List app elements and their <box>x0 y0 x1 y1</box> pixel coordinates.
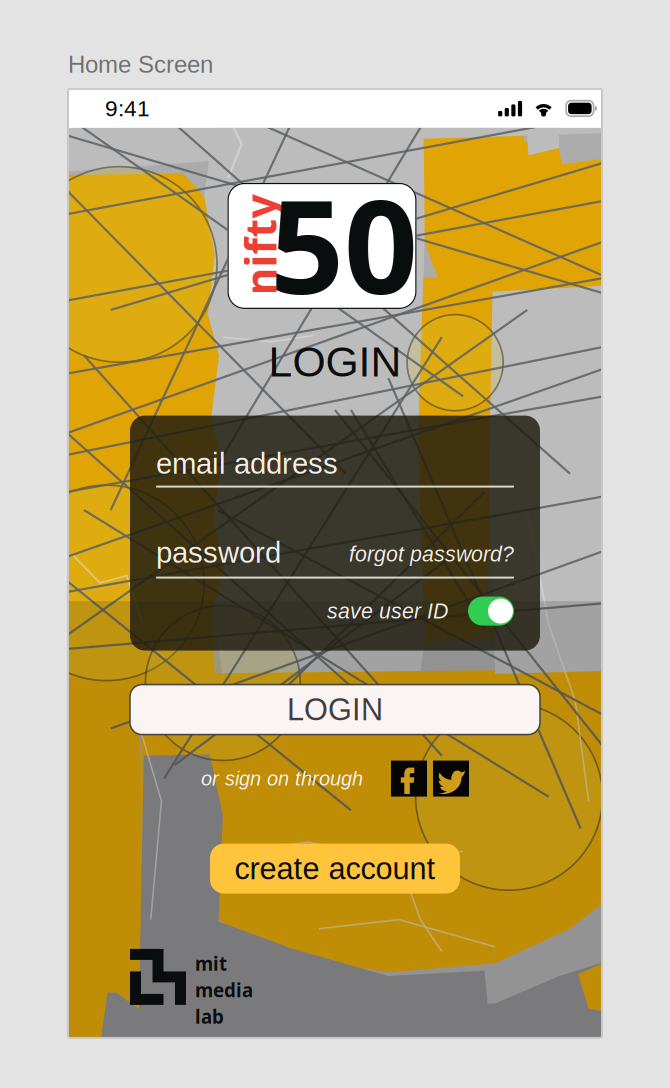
staticText: email address <box>156 447 338 480</box>
button[interactable]: forgot password? <box>349 542 514 569</box>
button[interactable]: create account <box>210 844 460 894</box>
staticText: password <box>156 536 281 569</box>
staticText: media <box>195 977 253 1003</box>
button[interactable]: Save user ID <box>468 597 514 626</box>
staticText: LOGIN <box>287 692 383 727</box>
button[interactable]: Sign on with Twitter <box>433 761 469 797</box>
staticText: 9:41 <box>105 96 150 121</box>
staticText: create account <box>234 851 435 886</box>
staticText: 50 <box>270 156 418 332</box>
staticText: or sign on through <box>201 767 363 790</box>
staticText: Home Screen <box>68 51 213 78</box>
button[interactable]: LOGIN <box>130 685 540 735</box>
staticText: LOGIN <box>268 338 401 386</box>
button[interactable]: Sign on with Facebook <box>391 761 427 797</box>
staticText: mit <box>195 951 227 976</box>
staticText: nifty <box>209 216 310 274</box>
staticText: save user ID <box>327 599 448 623</box>
staticText: forgot password? <box>349 542 514 566</box>
staticText: lab <box>195 1004 224 1029</box>
